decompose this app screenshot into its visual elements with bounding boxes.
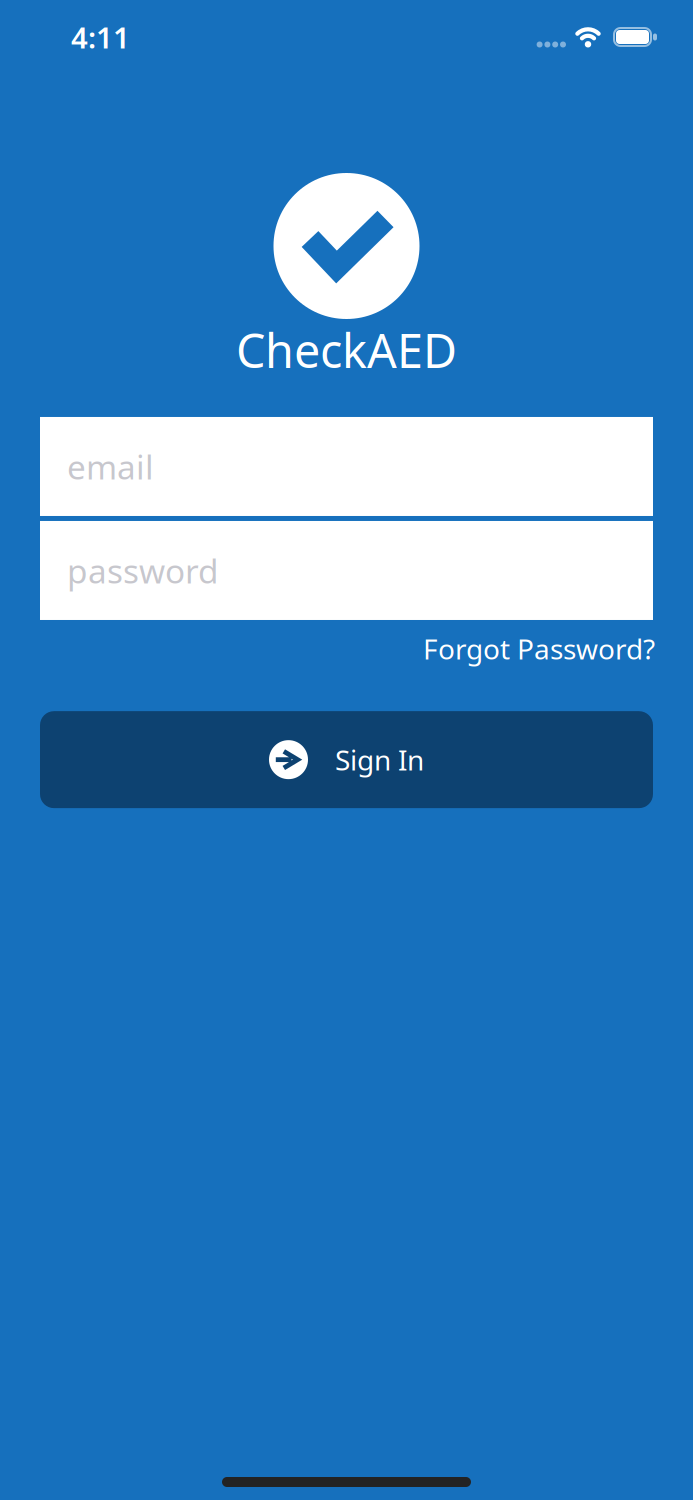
button[interactable]: password [40, 521, 653, 620]
staticText: password [67, 548, 219, 593]
button[interactable]: Forgot Password? [423, 630, 655, 667]
button[interactable]: email [40, 417, 653, 516]
staticText: 4:11 [71, 17, 130, 56]
button[interactable]: Sign In [40, 711, 653, 808]
staticText: email [67, 444, 154, 489]
staticText: Forgot Password? [423, 630, 655, 667]
staticText: Sign In [335, 741, 424, 778]
staticText: CheckAED [236, 319, 457, 381]
